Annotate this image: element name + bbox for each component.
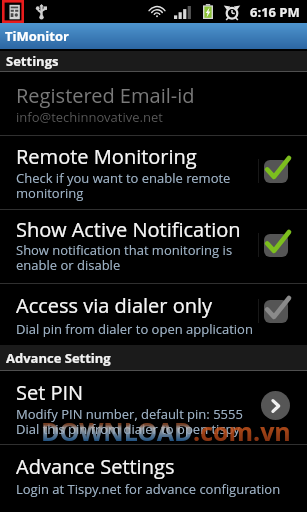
staticText: .com.vn — [193, 414, 291, 448]
button[interactable]: Registered Email-id — [16, 82, 307, 109]
staticText: 6:16 PM — [250, 3, 300, 21]
staticText: Check if you want to enable remote monit… — [16, 169, 231, 202]
staticText: Advance Setting — [6, 349, 111, 367]
staticText: Modify PIN number, default pin: 5555 Dia… — [16, 405, 243, 438]
staticText: Settings — [6, 52, 59, 70]
staticText: Dial pin from dialer to open application — [16, 320, 253, 338]
button[interactable]: Toggle — [248, 148, 304, 194]
button[interactable]: Set PIN — [261, 391, 290, 420]
button[interactable]: Advance Settings — [16, 453, 307, 480]
staticText: TiMonitor — [5, 27, 69, 45]
staticText: Show notification that monitoring is ena… — [16, 241, 233, 274]
staticText: Login at Tispy.net for advance configura… — [16, 480, 281, 498]
button[interactable]: Access via dialer only — [16, 292, 307, 319]
button[interactable]: Toggle — [248, 288, 304, 334]
staticText: DOWNLOAD — [41, 414, 193, 448]
button[interactable]: Show Active Notification — [16, 216, 307, 243]
button[interactable]: Remote Monitoring — [16, 143, 307, 170]
button[interactable]: Set PIN — [16, 379, 307, 406]
staticText: info@techinnovative.net — [16, 108, 163, 126]
button[interactable]: Toggle — [248, 222, 304, 268]
